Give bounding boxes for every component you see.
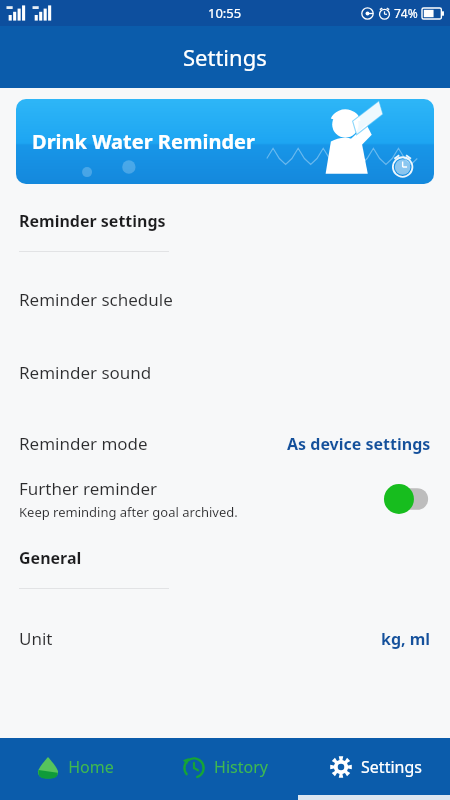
staticText: Home bbox=[68, 756, 114, 778]
other: Settings bbox=[329, 755, 353, 779]
staticText: Settings bbox=[361, 756, 422, 778]
button[interactable]: Settings bbox=[300, 738, 450, 800]
button[interactable]: History bbox=[150, 738, 300, 800]
button[interactable]: Reminder schedule bbox=[0, 284, 450, 315]
staticText: Reminder mode bbox=[19, 432, 148, 455]
staticText: Reminder schedule bbox=[19, 288, 173, 311]
staticText: Settings bbox=[183, 42, 267, 72]
staticText: Drink Water Reminder bbox=[32, 128, 255, 155]
other: Home bbox=[36, 755, 60, 779]
button[interactable]: Reminder sound bbox=[0, 357, 450, 388]
staticText: Reminder sound bbox=[19, 361, 152, 384]
staticText: kg, ml bbox=[381, 628, 431, 650]
staticText: Reminder settings bbox=[19, 210, 166, 232]
button[interactable]: Reminder mode bbox=[0, 428, 450, 459]
staticText: 10:55 bbox=[208, 4, 242, 22]
other: Further reminder toggle bbox=[383, 484, 431, 514]
button[interactable]: Home bbox=[0, 738, 150, 800]
staticText: Keep reminding after goal archived. bbox=[19, 503, 238, 521]
staticText: As device settings bbox=[287, 433, 431, 455]
other: History bbox=[182, 755, 206, 779]
staticText: Unit bbox=[19, 627, 53, 650]
staticText: History bbox=[214, 756, 268, 778]
staticText: 74% bbox=[394, 5, 418, 21]
staticText: Further reminder bbox=[19, 477, 158, 500]
button[interactable]: Unit bbox=[0, 623, 450, 654]
button[interactable]: Further reminder bbox=[0, 473, 450, 525]
staticText: General bbox=[19, 547, 82, 569]
button[interactable]: Drink Water Reminder bbox=[16, 99, 434, 184]
